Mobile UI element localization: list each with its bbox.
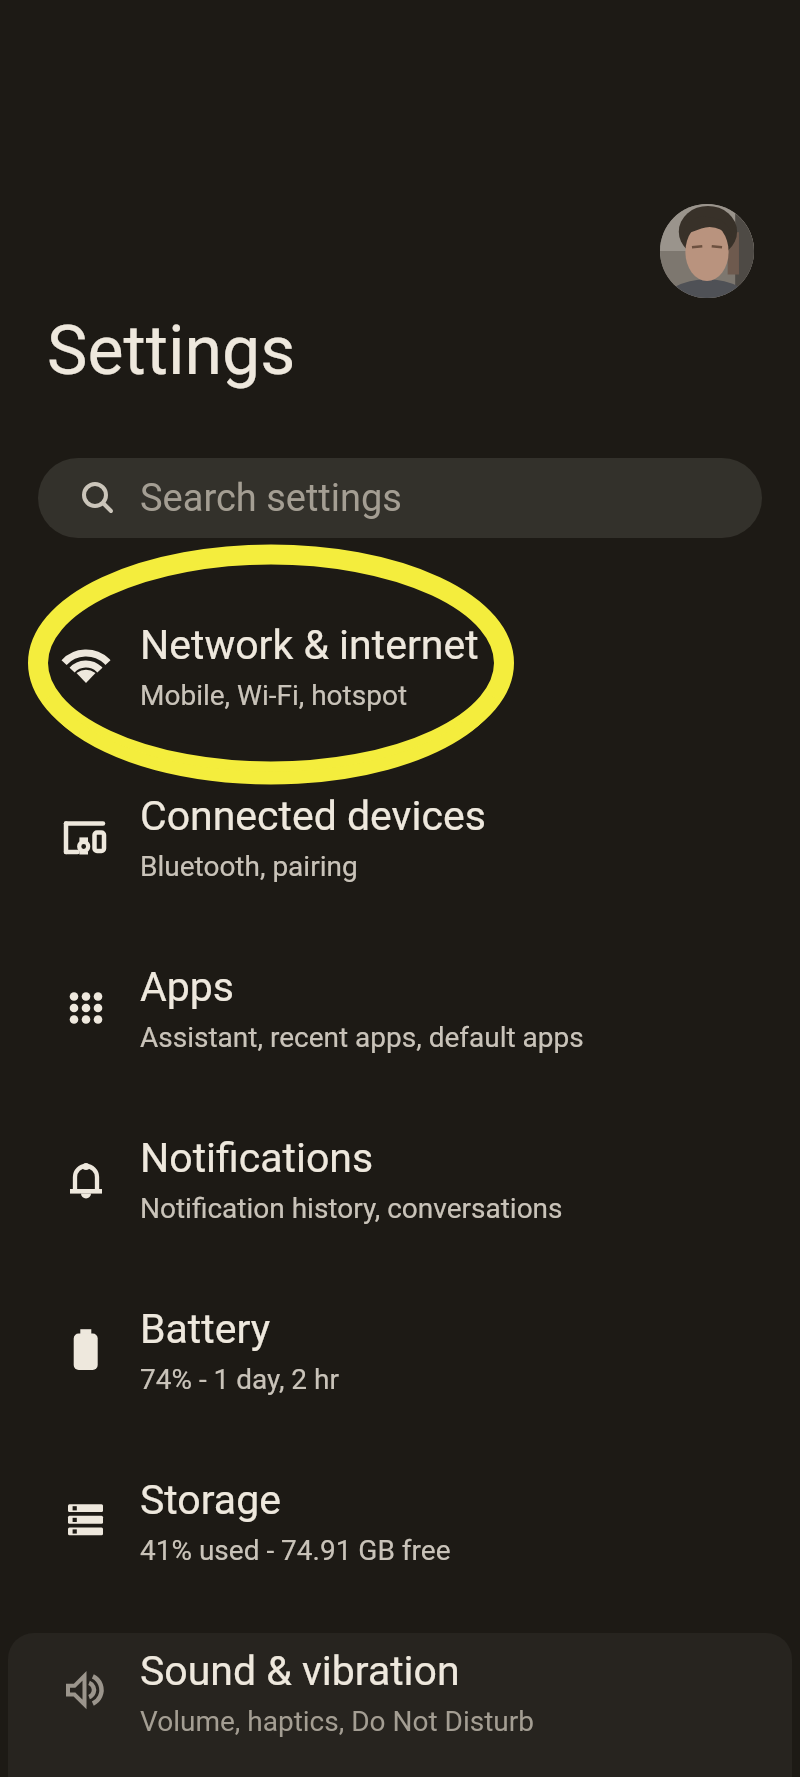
button[interactable]: Search settings [38,458,762,538]
staticText: Volume, haptics, Do Not Disturb [140,1705,534,1738]
staticText: Search settings [140,476,402,521]
staticText: Connected devices [140,792,486,840]
button[interactable]: Apps [0,923,800,1094]
staticText: Assistant, recent apps, default apps [140,1021,584,1054]
button[interactable]: Storage [0,1436,800,1607]
staticText: Storage [140,1476,281,1524]
staticText: Settings [47,311,296,391]
staticText: Notifications [140,1134,374,1182]
staticText: 74% - 1 day, 2 hr [140,1363,339,1396]
staticText: Mobile, Wi-Fi, hotspot [140,679,408,712]
button[interactable]: Network & internet [0,581,800,752]
staticText: Network & internet [140,621,479,669]
staticText: Battery [140,1305,271,1353]
staticText: Bluetooth, pairing [140,850,358,883]
button[interactable]: Battery [0,1265,800,1436]
staticText: Sound & vibration [140,1647,460,1695]
button[interactable] [660,204,754,298]
button[interactable]: Notifications [0,1094,800,1265]
button[interactable]: Sound & vibration [0,1607,800,1777]
staticText: 41% used - 74.91 GB free [140,1534,451,1567]
button[interactable]: Connected devices [0,752,800,923]
staticText: Apps [140,963,234,1011]
staticText: Notification history, conversations [140,1192,563,1225]
